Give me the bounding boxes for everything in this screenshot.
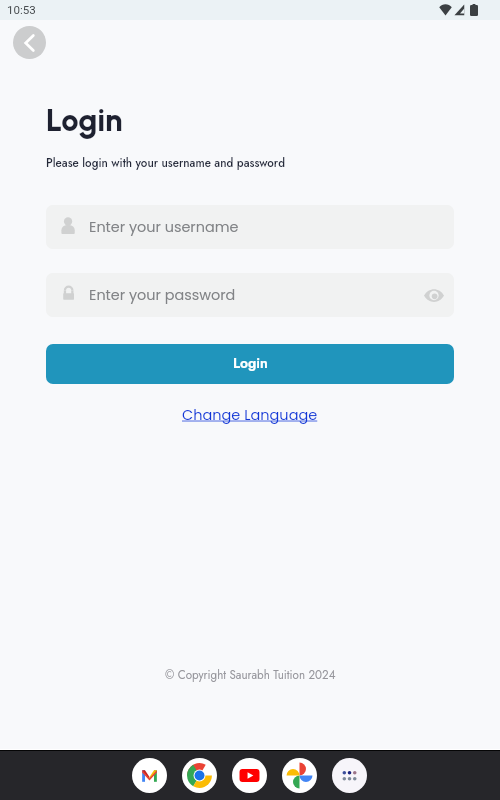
button[interactable]: Chrome: [182, 758, 217, 793]
staticText: Change Language: [182, 405, 318, 425]
button[interactable]: Show password: [414, 273, 454, 317]
button[interactable]: Enter your password: [46, 273, 454, 317]
staticText: Login: [46, 102, 123, 139]
button[interactable]: Change Language: [182, 405, 318, 425]
staticText: Please login with your username and pass…: [46, 155, 285, 172]
button[interactable]: Back: [13, 26, 46, 59]
staticText: 10:53: [7, 3, 36, 17]
staticText: Enter your password: [89, 285, 236, 305]
button[interactable]: YouTube: [232, 758, 267, 793]
staticText: © Copyright Saurabh Tuition 2024: [165, 667, 336, 684]
button[interactable]: Google Photos: [282, 758, 317, 793]
staticText: Enter your username: [89, 217, 239, 237]
button[interactable]: All apps: [332, 758, 367, 793]
staticText: Login: [233, 353, 268, 373]
button[interactable]: Enter your username: [46, 205, 454, 249]
button[interactable]: Gmail: [132, 758, 167, 793]
button[interactable]: Login: [46, 344, 454, 384]
